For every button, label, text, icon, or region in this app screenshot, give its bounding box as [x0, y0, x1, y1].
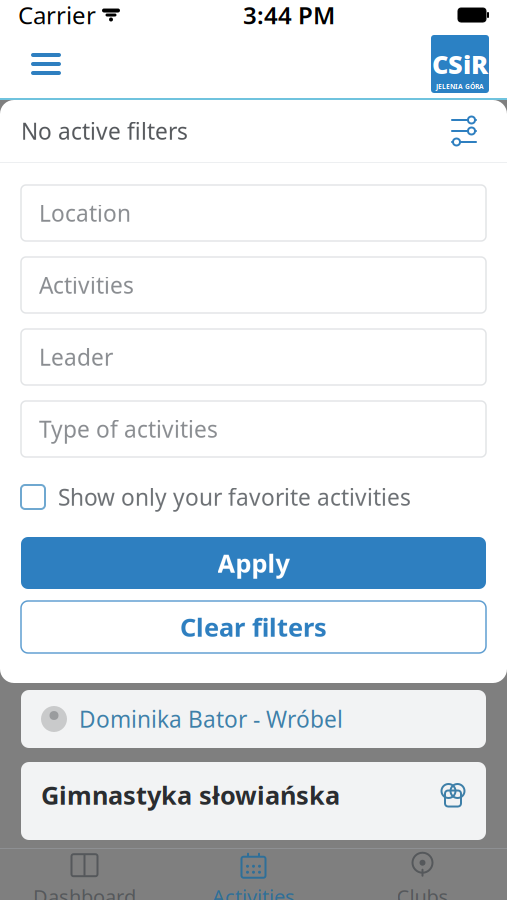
staticText: Clubs	[396, 883, 448, 900]
staticText: Location	[39, 198, 131, 228]
staticText: Leader	[39, 342, 113, 372]
staticText: No active filters	[21, 116, 188, 146]
button[interactable]: Apply	[0, 537, 507, 589]
staticText: Dominika Bator - Wróbel	[79, 704, 343, 734]
staticText: Apply	[217, 546, 289, 580]
staticText: Clear filters	[180, 610, 327, 644]
button[interactable]: Show only your favorite activities	[0, 479, 507, 515]
staticText: Carrier	[18, 0, 96, 31]
button[interactable]: CSiR Jelenia Góra	[431, 35, 489, 93]
button[interactable]: Leader	[0, 329, 507, 385]
staticText: JELENIA GÓRA	[436, 82, 484, 91]
button[interactable]: Type of activities	[0, 401, 507, 457]
staticText: Activities	[39, 270, 134, 300]
button[interactable]: Activities	[169, 849, 338, 900]
button[interactable]: Menu	[18, 42, 74, 86]
staticText: 3:44 PM	[243, 0, 335, 31]
button[interactable]: Clubs	[338, 849, 507, 900]
button[interactable]: Activities	[0, 257, 507, 313]
staticText: Type of activities	[39, 414, 218, 444]
staticText: Show only your favorite activities	[58, 482, 411, 512]
button[interactable]: Dashboard	[0, 849, 169, 900]
staticText: Dashboard	[33, 883, 136, 900]
button[interactable]: Location	[0, 185, 507, 241]
staticText: CSiR	[432, 47, 488, 81]
button[interactable]: Clear filters	[0, 601, 507, 653]
staticText: Activities	[212, 883, 295, 900]
staticText: Gimnastyka słowiańska	[41, 778, 340, 812]
button[interactable]: Filter options	[442, 111, 486, 151]
